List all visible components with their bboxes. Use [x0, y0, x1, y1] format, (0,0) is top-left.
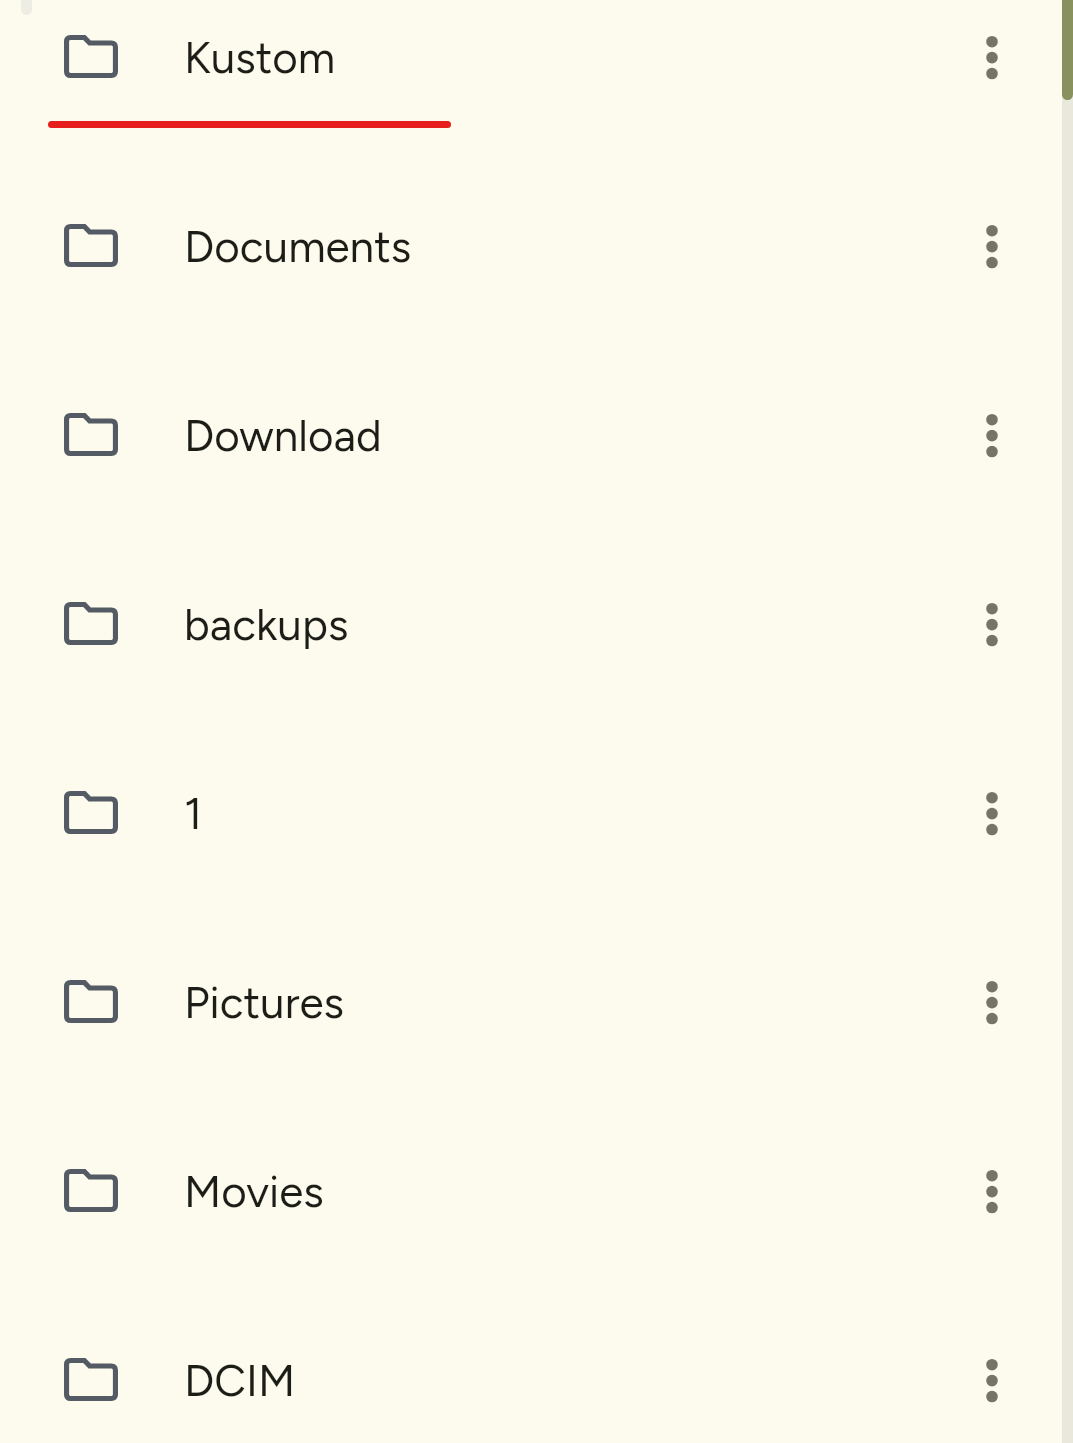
staticText: backups — [184, 598, 349, 651]
button[interactable]: More options — [946, 389, 1038, 481]
button[interactable]: 1 — [0, 756, 1073, 869]
staticText: Movies — [184, 1165, 324, 1218]
button[interactable]: Kustom — [0, 0, 1073, 113]
button[interactable]: More options — [946, 1145, 1038, 1237]
button[interactable]: Pictures — [0, 945, 1073, 1058]
button[interactable]: More options — [946, 1334, 1038, 1426]
button[interactable]: More options — [946, 11, 1038, 103]
button[interactable]: Movies — [0, 1134, 1073, 1247]
button[interactable]: Download — [0, 378, 1073, 491]
staticText: DCIM — [184, 1354, 296, 1407]
staticText: Documents — [184, 220, 412, 273]
button[interactable]: More options — [946, 578, 1038, 670]
button[interactable]: backups — [0, 567, 1073, 680]
button[interactable]: More options — [946, 956, 1038, 1048]
staticText: Download — [184, 409, 382, 462]
staticText: 1 — [184, 787, 203, 840]
button[interactable]: Documents — [0, 189, 1073, 302]
staticText: Kustom — [184, 31, 336, 84]
button[interactable]: DCIM — [0, 1323, 1073, 1436]
button[interactable]: More options — [946, 767, 1038, 859]
staticText: Pictures — [184, 976, 345, 1029]
button[interactable]: More options — [946, 200, 1038, 292]
